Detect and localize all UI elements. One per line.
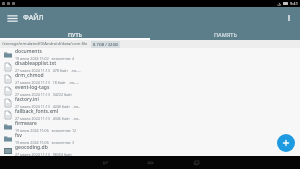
staticText: 19 июня 2024 15:02 элементов: 4 xyxy=(15,56,75,60)
button[interactable]: firmware xyxy=(0,120,300,132)
staticText: ПАМЯТЬ xyxy=(214,31,237,38)
button[interactable]: factory.ini xyxy=(0,96,300,108)
staticText: factory.ini xyxy=(15,96,39,103)
button[interactable]: geocoding.db xyxy=(0,144,300,156)
staticText: 8.7GB / 32GB xyxy=(93,42,118,47)
staticText: drm_chmod xyxy=(15,72,44,79)
staticText: event-log-tags xyxy=(15,84,50,91)
staticText: geocoding.db xyxy=(15,144,48,151)
button[interactable]: /storage/emulated/0/Android/data/com.fil… xyxy=(0,40,300,48)
button[interactable]: ПАМЯТЬ xyxy=(150,28,300,40)
button[interactable]: disableapplist.txt xyxy=(0,60,300,72)
staticText: 27 марта 2024 11:13 98304 байт xyxy=(15,152,72,156)
button[interactable]: More options xyxy=(281,10,297,26)
button[interactable]: Home xyxy=(133,156,167,169)
staticText: ФАЙЛ xyxy=(23,13,44,23)
staticText: firmware xyxy=(15,120,37,127)
staticText: ПУТЬ xyxy=(68,31,83,38)
staticText: fsv xyxy=(15,132,22,139)
staticText: 19 июня 2024 15:06 элементов: 3 xyxy=(15,140,75,144)
staticText: 27 марта 2024 11:13 34232 байт xyxy=(15,92,72,96)
button[interactable]: documents xyxy=(0,48,300,60)
staticText: 27 марта 2024 11:13 4240 байт -rw-- xyxy=(15,104,81,108)
staticText: 19 июня 2024 15:06 элементов: 12 xyxy=(15,128,77,132)
button[interactable]: fallback_fonts.xml xyxy=(0,108,300,120)
button[interactable]: Recent apps xyxy=(179,156,213,169)
staticText: fallback_fonts.xml xyxy=(15,108,59,115)
button[interactable]: ПУТЬ xyxy=(0,28,150,40)
button[interactable]: Open navigation drawer xyxy=(4,10,20,26)
staticText: 9:41 xyxy=(290,1,298,6)
button[interactable]: Add xyxy=(277,134,295,152)
staticText: disableapplist.txt xyxy=(15,60,57,67)
button[interactable]: fsv xyxy=(0,132,300,144)
button[interactable]: drm_chmod xyxy=(0,72,300,84)
button[interactable]: 8.7GB / 32GB xyxy=(91,41,120,48)
staticText: 27 марта 2024 11:13 478 байт -rw---- xyxy=(15,68,81,72)
staticText: 27 марта 2024 11:13 18 байт -rw---- xyxy=(15,80,79,84)
staticText: 27 марта 2024 11:13 4346 байт -rw-- xyxy=(15,116,81,120)
staticText: documents xyxy=(15,48,42,55)
staticText: /storage/emulated/0/Android/data/com.fil… xyxy=(2,41,88,47)
button[interactable]: Back xyxy=(87,156,121,169)
button[interactable]: event-log-tags xyxy=(0,84,300,96)
